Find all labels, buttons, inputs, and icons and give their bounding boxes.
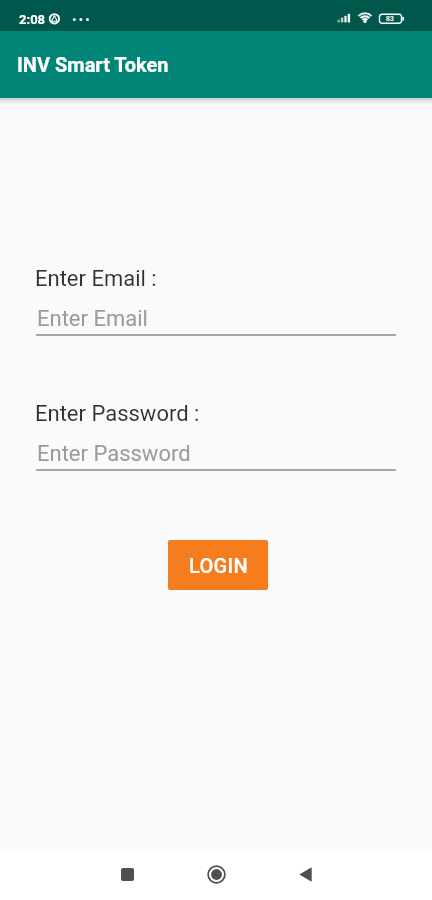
staticText: LOGIN [189, 554, 248, 577]
staticText: Enter Email [37, 306, 148, 332]
staticText: INV Smart Token [17, 53, 169, 76]
staticText: Enter Password [37, 441, 191, 467]
button[interactable]: Enter Password [36, 439, 396, 471]
staticText: 83 [386, 15, 394, 23]
button[interactable]: Enter Email [36, 304, 396, 336]
staticText: 2:08 [19, 12, 46, 27]
button[interactable] [293, 862, 318, 887]
button[interactable] [115, 862, 140, 887]
staticText: Enter Password : [35, 401, 200, 427]
button[interactable] [204, 862, 229, 887]
staticText: Enter Email : [35, 266, 157, 292]
button[interactable]: LOGIN [168, 540, 268, 590]
